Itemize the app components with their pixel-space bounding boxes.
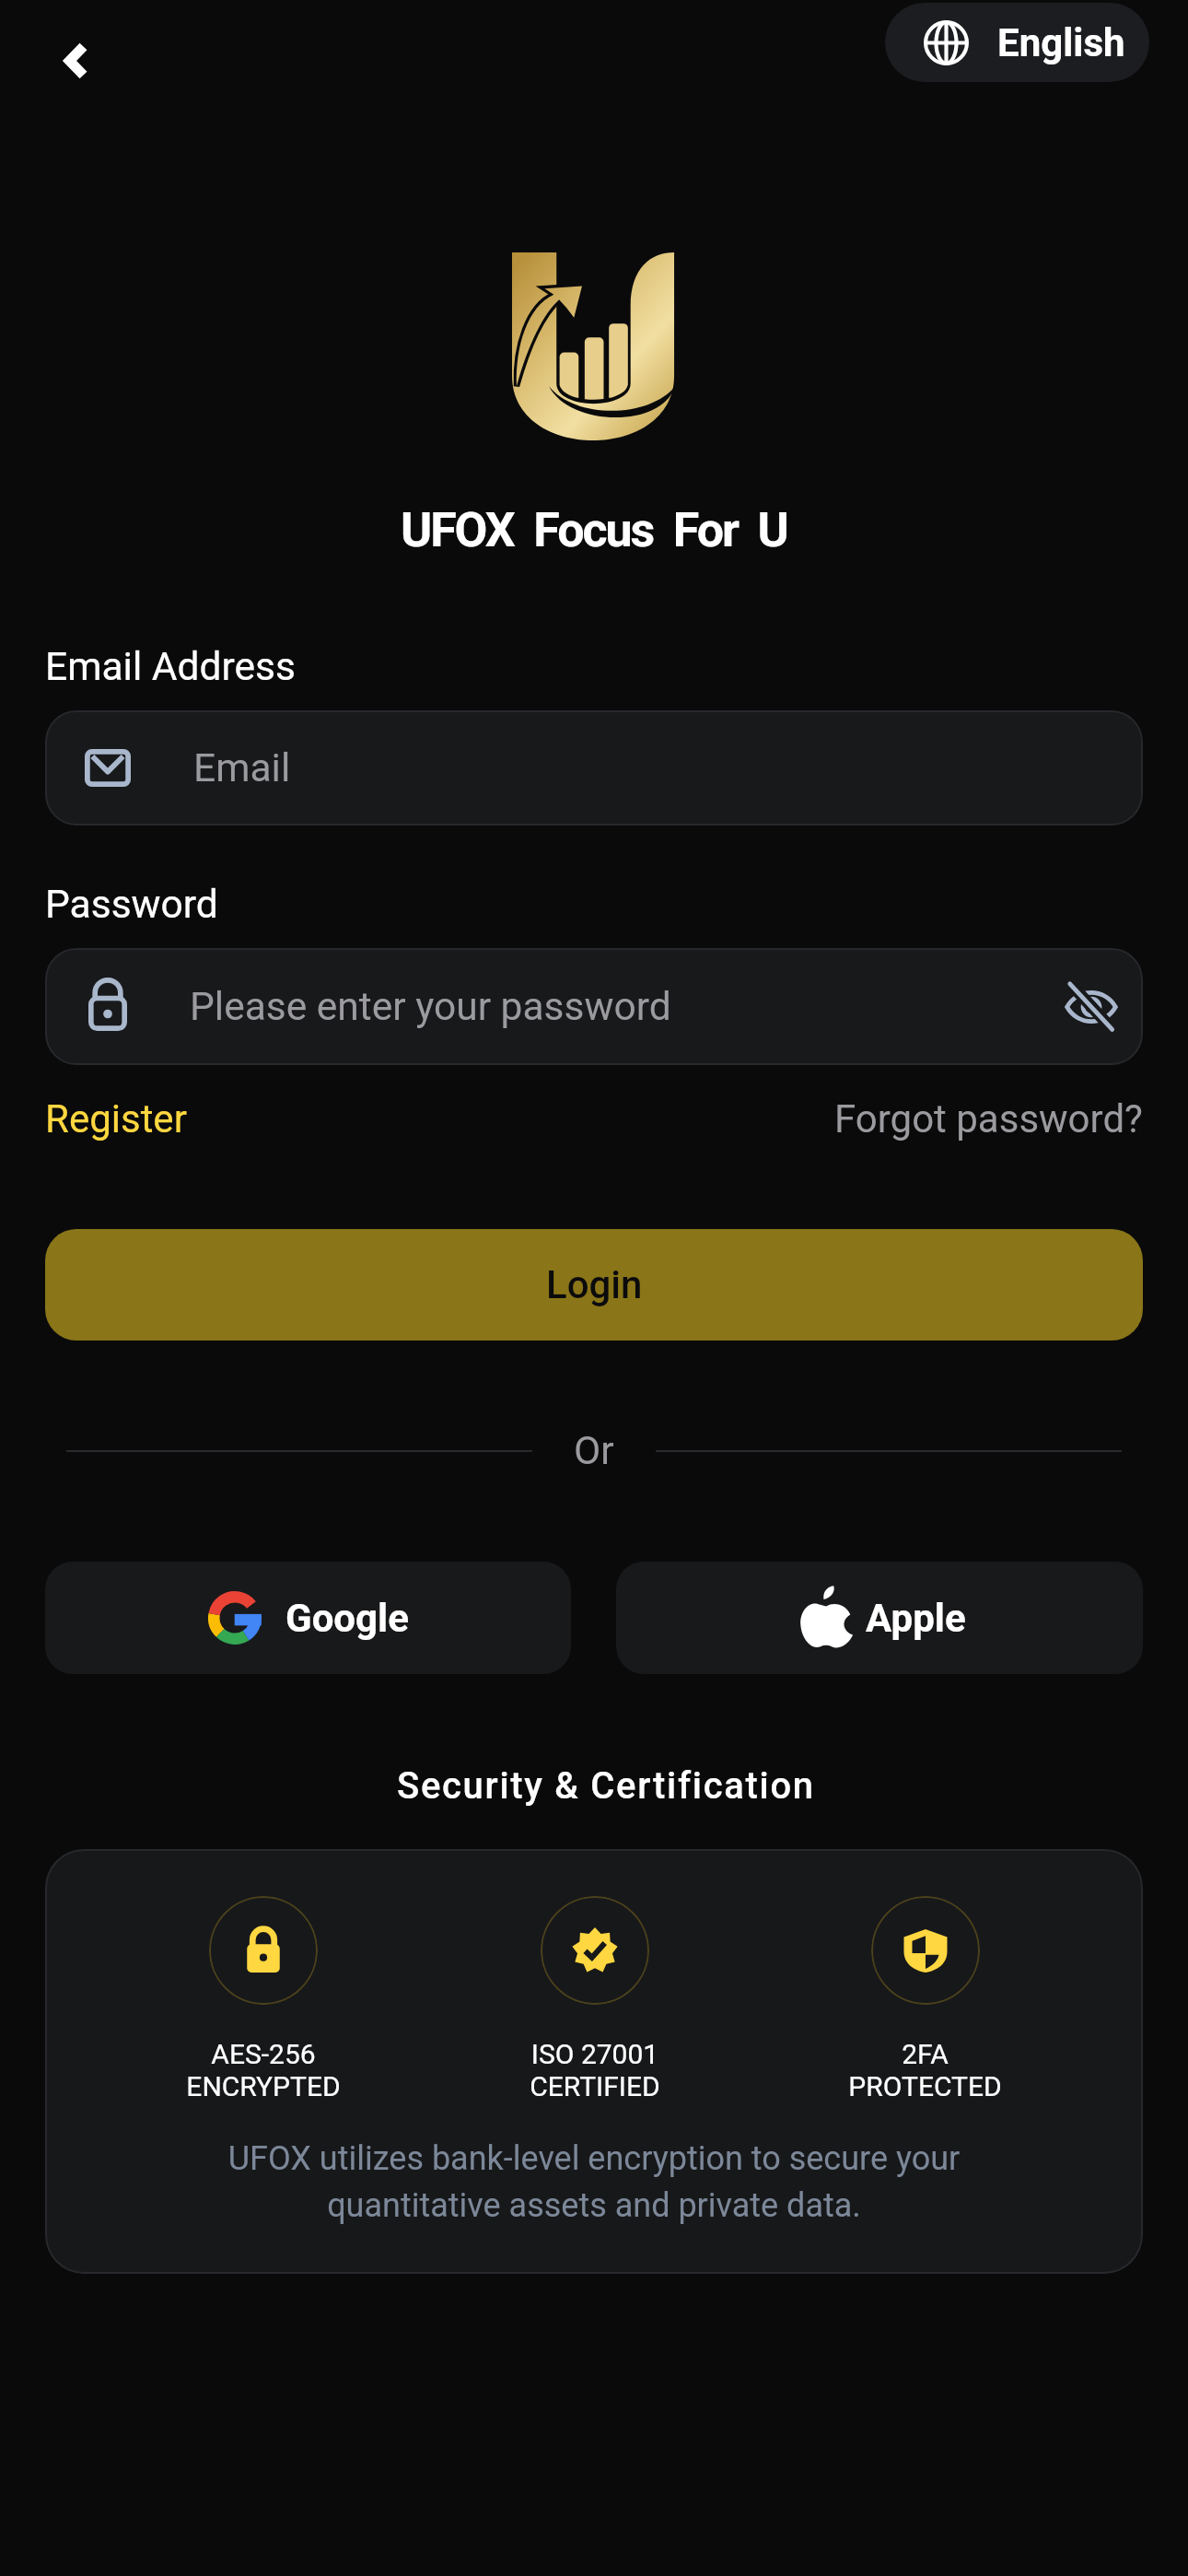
button[interactable]: Register bbox=[45, 1096, 187, 1142]
staticText: Apple bbox=[866, 1596, 966, 1641]
button[interactable]: Google bbox=[45, 1562, 571, 1674]
staticText: Or bbox=[574, 1428, 614, 1474]
staticText: UFOX Focus For U bbox=[401, 502, 787, 558]
staticText: Security & Certification bbox=[397, 1764, 815, 1808]
button[interactable]: Back bbox=[32, 17, 121, 105]
staticText: Login bbox=[546, 1262, 643, 1307]
staticText: Email bbox=[193, 745, 291, 791]
staticText: Google bbox=[285, 1596, 409, 1641]
button[interactable]: Please enter your password bbox=[45, 948, 1143, 1065]
staticText: ISO 27001 CERTIFIED bbox=[530, 2038, 660, 2102]
staticText: Please enter your password bbox=[190, 984, 1059, 1030]
button[interactable]: Email bbox=[45, 710, 1143, 825]
button[interactable]: Apple bbox=[616, 1562, 1143, 1674]
staticText: AES-256 ENCRYPTED bbox=[186, 2038, 341, 2102]
staticText: English bbox=[997, 20, 1125, 65]
staticText: Password bbox=[45, 882, 218, 928]
staticText: UFOX utilizes bank-level encryption to s… bbox=[45, 2139, 1143, 2224]
button[interactable]: Show password bbox=[1059, 975, 1124, 1039]
button[interactable]: Login bbox=[45, 1229, 1143, 1341]
staticText: 2FA PROTECTED bbox=[848, 2038, 1002, 2102]
button[interactable]: English bbox=[885, 3, 1149, 82]
staticText: Email Address bbox=[45, 644, 296, 690]
button[interactable]: Forgot password? bbox=[834, 1096, 1143, 1142]
